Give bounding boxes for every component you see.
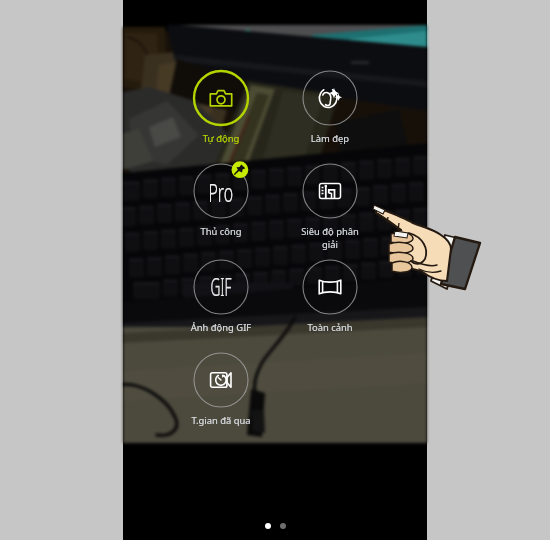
button[interactable]: Toàn cảnh <box>282 256 378 330</box>
button[interactable]: GIF <box>173 256 269 330</box>
button[interactable]: Tự động <box>173 67 269 141</box>
staticText: Ảnh động GIF <box>173 321 269 334</box>
staticText: GIF <box>210 268 232 303</box>
button[interactable]: Làm đẹp <box>282 67 378 141</box>
staticText: Toàn cảnh <box>282 321 378 334</box>
staticText: Siêu độ phân giải <box>282 225 378 250</box>
button[interactable]: Siêu độ phân giải <box>282 160 378 246</box>
button[interactable]: T.gian đã qua <box>173 349 269 423</box>
staticText: Thủ công <box>173 225 269 238</box>
staticText: Pro <box>208 174 234 210</box>
staticText: Làm đẹp <box>282 132 378 145</box>
staticText: Tự động <box>173 132 269 145</box>
button[interactable]: Pro <box>173 160 269 234</box>
staticText: T.gian đã qua <box>173 414 269 427</box>
